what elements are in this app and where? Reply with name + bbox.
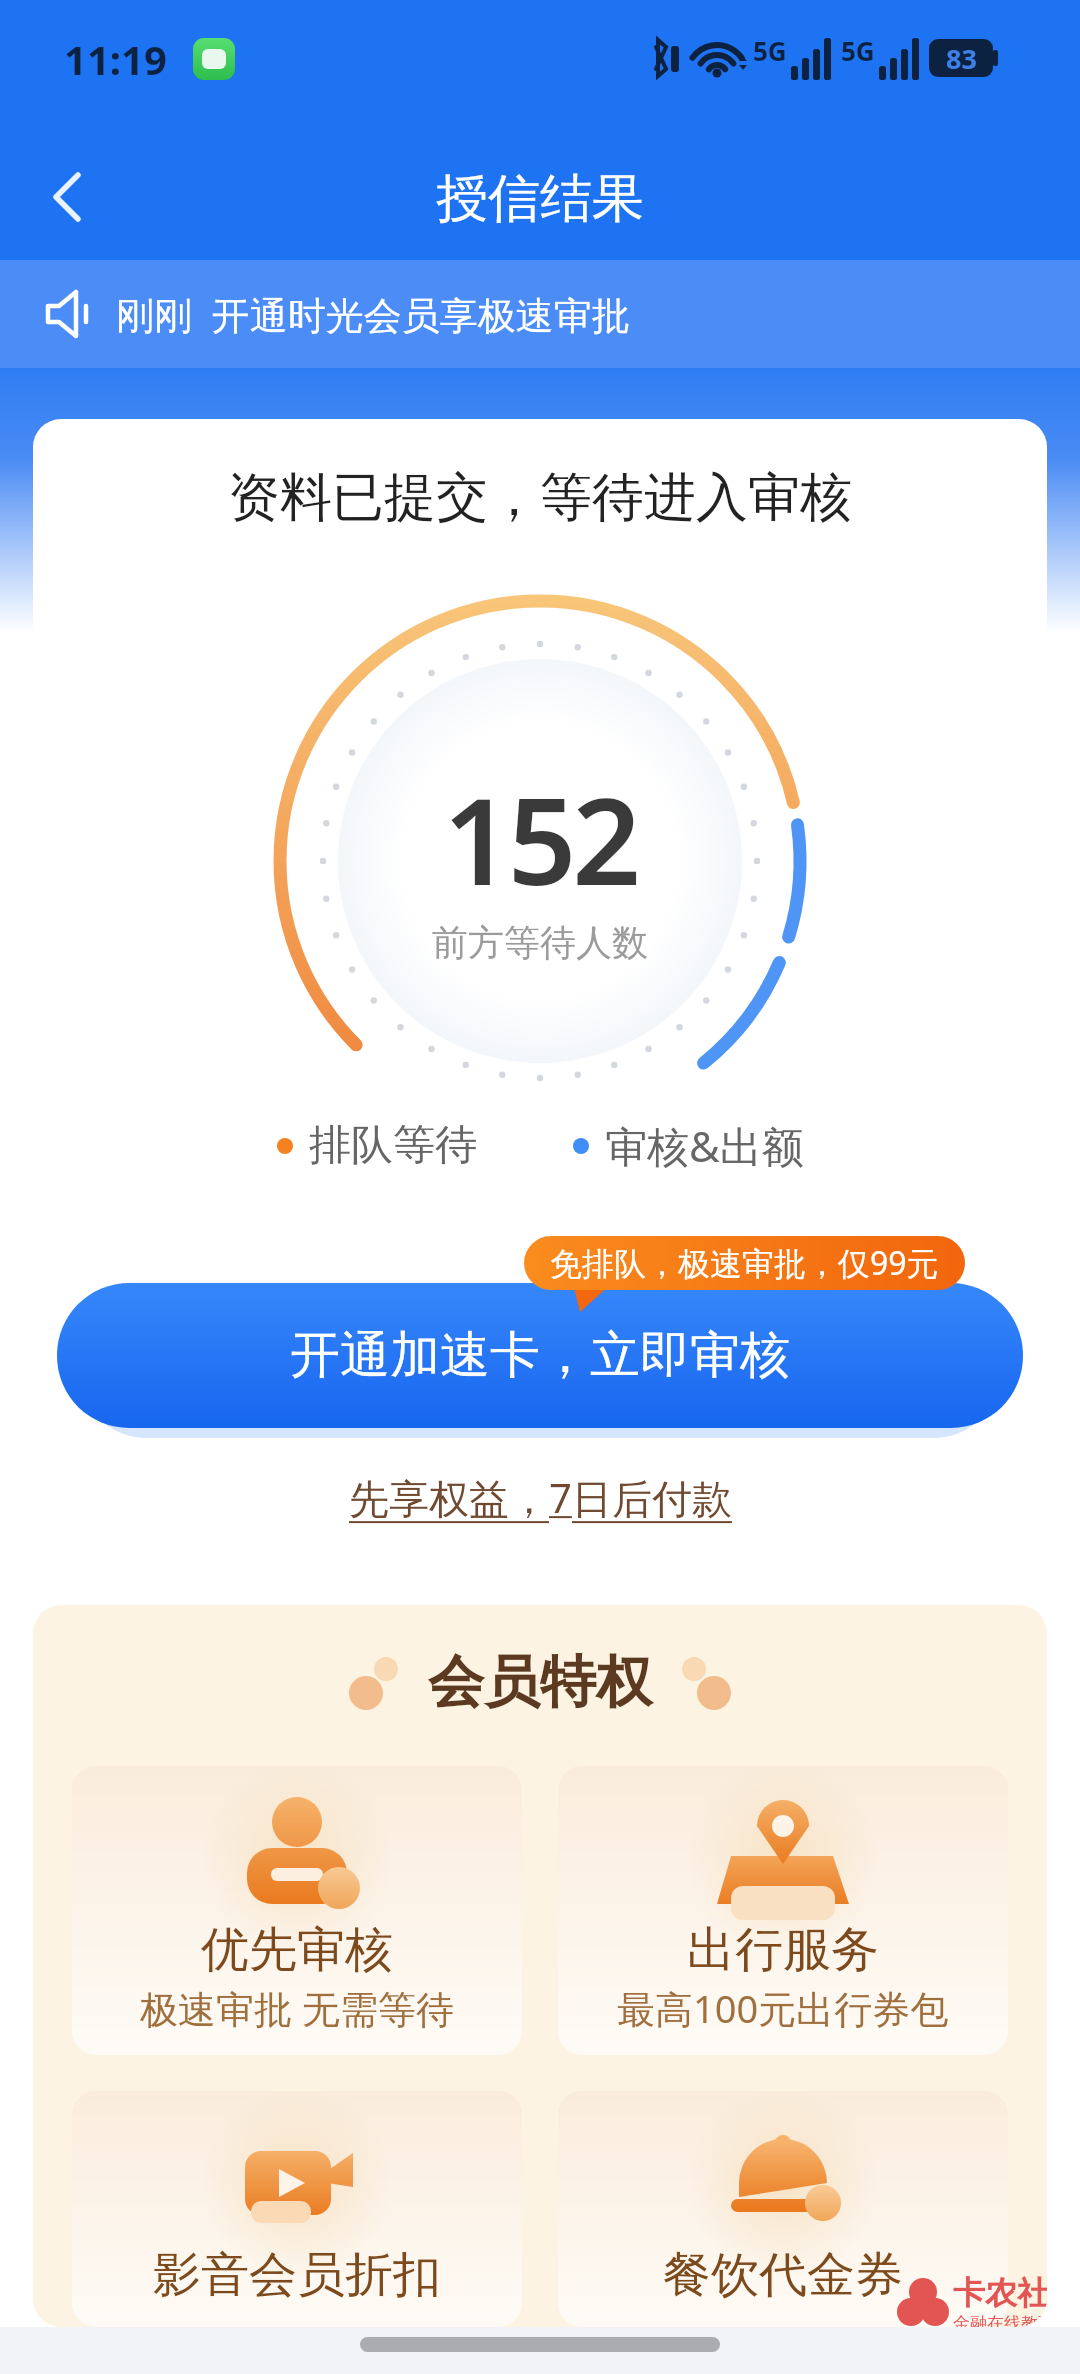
button[interactable]: 餐饮代金券	[558, 2091, 1008, 2327]
staticText: 11:19	[64, 32, 167, 86]
staticText: 前方等待人数	[432, 920, 648, 965]
button[interactable]: 免排队，极速审批，仅99元	[524, 1236, 965, 1290]
staticText: 5G	[753, 33, 787, 68]
staticText: 5G	[841, 33, 875, 68]
staticText: 授信结果	[436, 166, 644, 232]
button[interactable]	[48, 172, 92, 222]
staticText: 最高100元出行券包	[617, 1982, 949, 2034]
staticText: 审核&出额	[605, 1117, 804, 1174]
staticText: 餐饮代金券	[663, 2245, 903, 2305]
staticText: 资料已提交，等待进入审核	[33, 465, 1047, 531]
staticText: 刚刚 开通时光会员享极速审批	[116, 288, 630, 340]
button[interactable]: 先享权益，7日后付款	[349, 1470, 732, 1525]
button[interactable]: 开通加速卡，立即审核	[57, 1283, 1023, 1428]
staticText: 金融在线教育	[953, 2313, 1047, 2327]
staticText: 免排队，极速审批，仅99元	[550, 1241, 939, 1285]
staticText: 优先审核	[201, 1920, 393, 1980]
staticText: 极速审批 无需等待	[140, 1982, 454, 2034]
staticText: 排队等待	[309, 1119, 477, 1172]
staticText: 会员特权	[428, 1647, 652, 1718]
button[interactable]: 优先审核	[72, 1766, 522, 2055]
staticText: 83	[946, 40, 977, 77]
staticText: 出行服务	[687, 1920, 879, 1980]
staticText: 影音会员折扣	[153, 2245, 441, 2305]
button[interactable]: 刚刚 开通时光会员享极速审批	[0, 260, 1080, 368]
staticText: 卡农社区	[953, 2273, 1047, 2313]
button[interactable]: 影音会员折扣	[72, 2091, 522, 2327]
staticText: 152	[443, 757, 637, 920]
button[interactable]: 出行服务	[558, 1766, 1008, 2055]
staticText: 开通加速卡，立即审核	[290, 1324, 790, 1387]
